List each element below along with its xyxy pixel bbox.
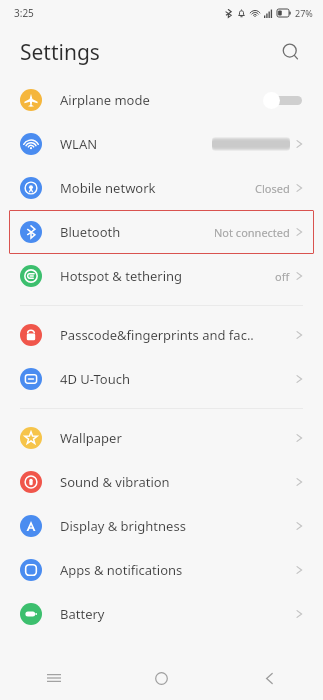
button[interactable]: Passcode&fingerprints and fac.. bbox=[0, 313, 323, 357]
staticText: Bluetooth bbox=[60, 223, 214, 241]
button[interactable]: Search bbox=[277, 38, 305, 66]
button[interactable]: Recents bbox=[0, 656, 107, 700]
staticText: Sound & vibration bbox=[60, 473, 296, 491]
staticText: Closed bbox=[255, 181, 290, 196]
button[interactable]: Hotspot & tethering bbox=[0, 254, 323, 298]
button[interactable]: Back bbox=[215, 656, 323, 700]
staticText: off bbox=[275, 269, 290, 284]
button[interactable]: Sound & vibration bbox=[0, 460, 323, 504]
button[interactable]: 4D U-Touch bbox=[0, 357, 323, 401]
staticText: 3:25 bbox=[14, 6, 34, 20]
staticText: 4D U-Touch bbox=[60, 370, 296, 388]
button[interactable]: Airplane mode bbox=[0, 78, 323, 122]
staticText: Display & brightness bbox=[60, 517, 296, 535]
staticText: Passcode&fingerprints and fac.. bbox=[60, 326, 296, 344]
button[interactable]: Wallpaper bbox=[0, 416, 323, 460]
button[interactable]: Mobile network bbox=[0, 166, 323, 210]
button[interactable]: Display & brightness bbox=[0, 504, 323, 548]
staticText: 27% bbox=[295, 7, 313, 19]
staticText: Settings bbox=[20, 38, 100, 67]
staticText: Wallpaper bbox=[60, 429, 296, 447]
button[interactable]: WLAN bbox=[0, 122, 323, 166]
staticText: Hotspot & tethering bbox=[60, 267, 275, 285]
staticText: Battery bbox=[60, 605, 296, 623]
staticText: Airplane mode bbox=[60, 91, 263, 109]
button[interactable]: Apps & notifications bbox=[0, 548, 323, 592]
button[interactable]: Bluetooth bbox=[9, 210, 314, 254]
staticText: Not connected bbox=[214, 225, 290, 240]
staticText: Apps & notifications bbox=[60, 561, 296, 579]
button[interactable]: Home bbox=[107, 656, 215, 700]
button[interactable]: Battery bbox=[0, 592, 323, 636]
staticText: WLAN bbox=[60, 135, 212, 153]
staticText: Mobile network bbox=[60, 179, 255, 197]
